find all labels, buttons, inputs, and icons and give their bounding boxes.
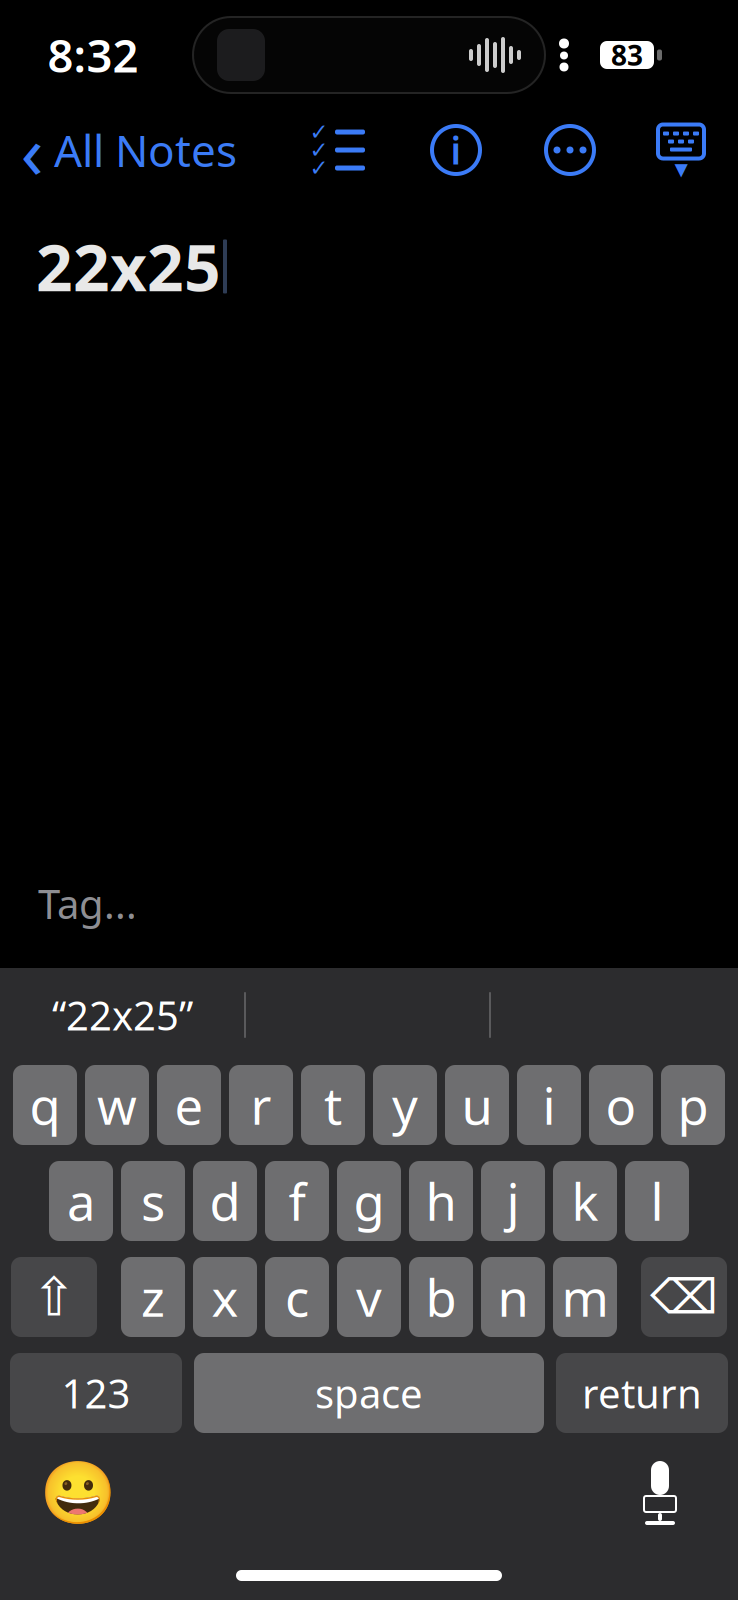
- staticText: return: [582, 1366, 702, 1419]
- button[interactable]: Tag...: [36, 869, 139, 938]
- button[interactable]: Checklist: [298, 119, 378, 181]
- button[interactable]: Info: [424, 120, 488, 180]
- staticText: ⇧: [31, 1267, 76, 1327]
- staticText: f: [288, 1167, 305, 1235]
- button[interactable]: y: [373, 1065, 437, 1145]
- button[interactable]: t: [301, 1065, 365, 1145]
- button[interactable]: j: [481, 1161, 545, 1241]
- button[interactable]: o: [589, 1065, 653, 1145]
- staticText: ⌫: [650, 1270, 718, 1324]
- staticText: r: [250, 1071, 271, 1139]
- staticText: p: [677, 1071, 708, 1139]
- button[interactable]: p: [661, 1065, 725, 1145]
- button[interactable]: u: [445, 1065, 509, 1145]
- staticText: 😀: [40, 1458, 116, 1528]
- staticText: k: [571, 1167, 598, 1235]
- button[interactable]: Hide Keyboard: [648, 117, 714, 183]
- staticText: m: [561, 1263, 608, 1331]
- button[interactable]: i: [517, 1065, 581, 1145]
- button[interactable]: f: [265, 1161, 329, 1241]
- button[interactable]: n: [481, 1257, 545, 1337]
- staticText: o: [605, 1071, 636, 1139]
- button[interactable]: e: [157, 1065, 221, 1145]
- staticText: h: [425, 1167, 456, 1235]
- button[interactable]: ‹: [0, 111, 237, 189]
- button[interactable]: q: [13, 1065, 77, 1145]
- button[interactable]: Second suggestion: [245, 967, 490, 1063]
- button[interactable]: More options: [538, 120, 602, 180]
- staticText: a: [67, 1167, 95, 1235]
- button[interactable]: Delete: [641, 1257, 727, 1337]
- staticText: 123: [61, 1366, 130, 1419]
- button[interactable]: l: [625, 1161, 689, 1241]
- staticText: v: [356, 1263, 382, 1331]
- staticText: c: [285, 1263, 309, 1331]
- staticText: n: [497, 1263, 528, 1331]
- staticText: d: [209, 1167, 240, 1235]
- staticText: u: [461, 1071, 492, 1139]
- staticText: g: [353, 1167, 384, 1235]
- staticText: s: [141, 1167, 165, 1235]
- button[interactable]: g: [337, 1161, 401, 1241]
- button[interactable]: w: [85, 1065, 149, 1145]
- staticText: “22x25”: [52, 988, 193, 1041]
- staticText: 83: [611, 36, 643, 74]
- staticText: ▾: [674, 153, 687, 184]
- staticText: e: [174, 1071, 203, 1139]
- staticText: 22x25: [36, 224, 221, 309]
- staticText: 8:32: [47, 25, 138, 85]
- button[interactable]: a: [49, 1161, 113, 1241]
- staticText: q: [29, 1071, 60, 1139]
- button[interactable]: Dictation: [630, 1457, 690, 1529]
- staticText: i: [542, 1071, 555, 1139]
- staticText: y: [392, 1071, 418, 1139]
- staticText: l: [650, 1167, 663, 1235]
- button[interactable]: “22x25”: [0, 967, 245, 1063]
- staticText: b: [425, 1263, 456, 1331]
- button[interactable]: d: [193, 1161, 257, 1241]
- button[interactable]: k: [553, 1161, 617, 1241]
- button[interactable]: Shift: [11, 1257, 97, 1337]
- button[interactable]: 123: [10, 1353, 182, 1433]
- staticText: j: [506, 1167, 519, 1235]
- button[interactable]: h: [409, 1161, 473, 1241]
- button[interactable]: return: [556, 1353, 728, 1433]
- staticText: w: [97, 1071, 137, 1139]
- staticText: z: [141, 1263, 165, 1331]
- button[interactable]: z: [121, 1257, 185, 1337]
- button[interactable]: v: [337, 1257, 401, 1337]
- staticText: i: [450, 125, 461, 175]
- staticText: ✓: [309, 119, 328, 145]
- staticText: space: [315, 1366, 423, 1419]
- button[interactable]: c: [265, 1257, 329, 1337]
- staticText: t: [324, 1071, 342, 1139]
- staticText: ‹: [20, 100, 43, 200]
- button[interactable]: x: [193, 1257, 257, 1337]
- button[interactable]: b: [409, 1257, 473, 1337]
- button[interactable]: space: [194, 1353, 544, 1433]
- staticText: ✓: [309, 155, 328, 181]
- staticText: All Notes: [54, 121, 237, 179]
- button[interactable]: s: [121, 1161, 185, 1241]
- button[interactable]: r: [229, 1065, 293, 1145]
- staticText: Tag...: [38, 877, 137, 930]
- button[interactable]: Emoji: [48, 1460, 108, 1526]
- staticText: ✓: [309, 137, 328, 163]
- button[interactable]: Third suggestion: [490, 967, 738, 1063]
- button[interactable]: m: [553, 1257, 617, 1337]
- staticText: x: [211, 1263, 238, 1331]
